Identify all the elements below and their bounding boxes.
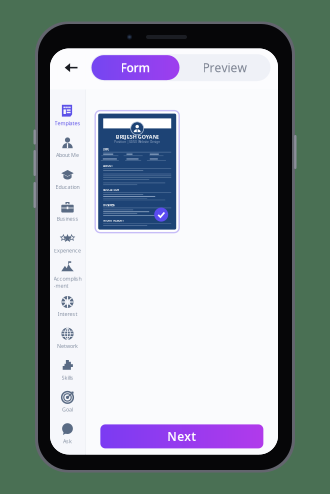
staticText: Interest: [57, 310, 77, 318]
staticText: Ask: [63, 438, 72, 445]
staticText: EDUCATION: [103, 188, 119, 192]
button[interactable]: Resume template: [94, 110, 180, 234]
staticText: About Me: [56, 151, 79, 159]
staticText: BRIJESH GOYANI: [116, 133, 159, 140]
staticText: BUSINESS: [103, 203, 114, 207]
button[interactable]: Accomplish -ment: [50, 259, 85, 290]
staticText: Education: [55, 183, 79, 190]
button[interactable]: Education: [50, 163, 85, 195]
staticText: Goal: [62, 406, 73, 413]
button[interactable]: About Me: [50, 131, 85, 163]
button[interactable]: Business: [50, 195, 85, 227]
staticText: ABOUT: [103, 164, 113, 168]
button[interactable]: Templates: [50, 100, 85, 131]
button[interactable]: Preview: [179, 55, 269, 80]
button[interactable]: Ask: [50, 418, 85, 449]
staticText: INFO: [103, 148, 109, 151]
button[interactable]: Next: [100, 424, 263, 448]
staticText: Experience: [54, 247, 81, 254]
button[interactable]: Back: [57, 54, 85, 82]
staticText: Accomplish -ment: [53, 275, 81, 289]
button[interactable]: Experience: [50, 227, 85, 259]
button[interactable]: Skills: [50, 354, 85, 386]
staticText: Preview: [202, 60, 246, 75]
staticText: Network: [57, 342, 78, 349]
button[interactable]: Network: [50, 322, 85, 354]
staticText: Position | UI/UX Website Design: [114, 140, 160, 144]
button[interactable]: Goal: [50, 386, 85, 418]
button[interactable]: Form: [91, 55, 179, 80]
staticText: Next: [167, 428, 196, 444]
staticText: Business: [56, 215, 78, 222]
button[interactable]: Interest: [50, 290, 85, 322]
staticText: Skills: [61, 374, 73, 381]
staticText: WORK HISTORY: [103, 219, 124, 222]
staticText: Form: [120, 60, 150, 75]
staticText: Templates: [54, 120, 80, 127]
